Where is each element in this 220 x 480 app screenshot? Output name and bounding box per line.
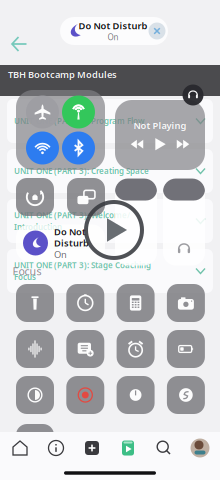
button[interactable]: Previous Track [130,138,143,151]
button[interactable]: Dark Mode [16,376,54,414]
button[interactable]: Flashlight [16,284,54,322]
button[interactable]: Rotation Lock [16,178,54,216]
staticText: UNIT ONE (PART 3): Welcome/ [14,210,130,220]
staticText: Focus [14,271,36,282]
staticText: On [107,32,118,42]
button[interactable]: Screen Recording [66,376,104,414]
staticText: Introduction [14,221,62,232]
staticText: Do Not [54,225,86,238]
button[interactable]: Alarm [117,330,155,368]
staticText: On [54,248,67,261]
button[interactable]: Search [146,433,182,463]
button[interactable]: Wi-Fi [26,131,59,164]
staticText: UNIT ONE (PART 3): Stage Coaching [14,260,151,270]
button[interactable]: Low Power Mode [167,330,205,368]
button[interactable]: Back [1,27,36,61]
button[interactable]: Next Track [176,138,189,151]
staticText: Focus [12,264,41,278]
button[interactable]: Do Not [16,224,105,261]
button[interactable]: Shazam [167,376,205,414]
staticText: Not Playing [133,119,186,132]
button[interactable]: Camera [167,284,205,322]
button[interactable]: Play [153,138,166,151]
button[interactable]: Info [38,433,74,463]
button[interactable]: Hearing [16,424,54,462]
button[interactable]: Notes [66,330,104,368]
button[interactable]: Voice Memos [16,330,54,368]
staticText: UNIT ONE (PART 3): Program Flow [14,116,145,126]
staticText: Hearing [25,452,44,460]
button[interactable]: Screen Mirroring [67,178,105,216]
button[interactable]: Calculator [117,284,155,322]
staticText: Disturb [54,237,89,249]
button[interactable]: Brightness [115,178,157,265]
button[interactable]: Cellular Data [62,95,95,128]
button[interactable]: Library [110,433,146,463]
button[interactable]: Airplane Mode [26,95,59,128]
staticText: UNIT ONE (PART 3): Creating Space [14,166,149,176]
button[interactable]: Add [74,433,110,463]
staticText: Do Not Disturb [78,19,147,32]
button[interactable]: Audio Output [182,84,203,105]
staticText: TBH Bootcamp Modules [8,68,117,81]
button[interactable]: Bluetooth [62,131,95,164]
button[interactable]: Sound Level [117,376,155,414]
button[interactable]: Volume [163,178,205,265]
button[interactable]: Dismiss [148,22,165,39]
button[interactable]: Timer [66,284,104,322]
button[interactable]: Profile [182,433,218,463]
button[interactable]: Home [2,433,38,463]
